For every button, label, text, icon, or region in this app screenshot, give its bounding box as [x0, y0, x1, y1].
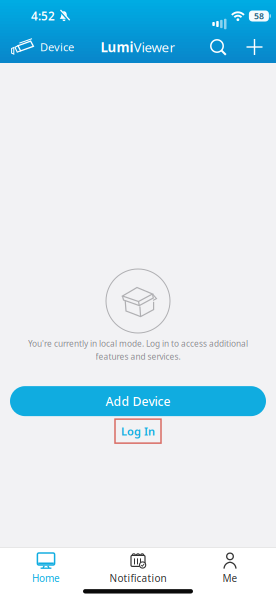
staticText: Add Device	[105, 393, 170, 409]
button[interactable]: Notification	[92, 547, 184, 585]
button[interactable]: Add	[241, 33, 268, 60]
staticText: Notification	[109, 571, 166, 585]
staticText: Home	[32, 571, 60, 585]
staticText: 58	[254, 10, 264, 22]
staticText: Me	[222, 571, 237, 585]
staticText: LumiViewer	[100, 38, 175, 56]
staticText: 4:52	[31, 8, 55, 24]
button[interactable]: Home	[0, 547, 92, 585]
button[interactable]: Device	[0, 37, 74, 56]
button[interactable]: Search	[204, 33, 232, 61]
button[interactable]: Me	[184, 547, 276, 585]
button[interactable]: Add Device	[10, 386, 266, 416]
button[interactable]: Log In	[115, 419, 161, 443]
staticText: Device	[40, 40, 74, 54]
staticText: features and services.	[95, 351, 180, 362]
staticText: You're currently in local mode. Log in t…	[28, 338, 248, 349]
staticText: Log In	[121, 424, 155, 438]
